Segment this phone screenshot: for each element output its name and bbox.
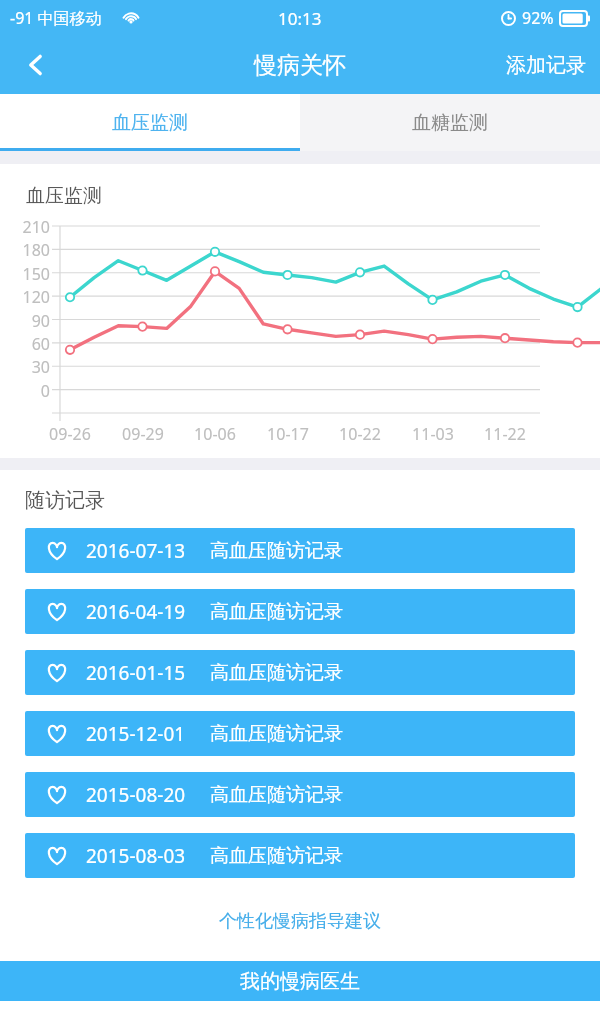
- staticText: 11-03: [399, 423, 467, 445]
- staticText: 09-29: [109, 423, 177, 445]
- staticText: 90: [0, 310, 50, 332]
- button[interactable]: 添加记录: [492, 36, 600, 94]
- staticText: 个性化慢病指导建议: [219, 910, 381, 933]
- staticText: 10-06: [181, 423, 249, 445]
- staticText: 92%: [522, 7, 554, 29]
- staticText: 10-17: [254, 423, 322, 445]
- button[interactable]: 血糖监测: [300, 94, 600, 151]
- button[interactable]: 2015-08-03: [25, 833, 575, 878]
- staticText: 高血压随访记录: [210, 600, 343, 624]
- staticText: 150: [0, 263, 50, 285]
- staticText: 添加记录: [506, 53, 586, 78]
- button[interactable]: 血压监测: [0, 94, 300, 151]
- staticText: 60: [0, 333, 50, 355]
- button[interactable]: 个性化慢病指导建议: [203, 906, 397, 937]
- staticText: 高血压随访记录: [210, 539, 343, 563]
- staticText: 2016-07-13: [86, 538, 186, 564]
- button[interactable]: 2016-01-15: [25, 650, 575, 695]
- staticText: 2015-08-03: [86, 843, 186, 869]
- staticText: 09-26: [36, 423, 104, 445]
- staticText: 高血压随访记录: [210, 844, 343, 868]
- staticText: 0: [0, 380, 50, 402]
- staticText: 高血压随访记录: [210, 783, 343, 807]
- staticText: 2015-12-01: [86, 721, 186, 747]
- button[interactable]: 我的慢病医生: [0, 961, 600, 1001]
- staticText: 慢病关怀: [254, 51, 346, 80]
- staticText: 高血压随访记录: [210, 661, 343, 685]
- staticText: 我的慢病医生: [240, 969, 360, 994]
- staticText: 180: [0, 239, 50, 261]
- button[interactable]: 2016-04-19: [25, 589, 575, 634]
- staticText: 血压监测: [112, 111, 188, 135]
- staticText: -91 中国移动: [10, 7, 102, 29]
- staticText: 2016-04-19: [86, 599, 186, 625]
- staticText: 11-22: [471, 423, 539, 445]
- staticText: 210: [0, 216, 50, 238]
- staticText: 30: [0, 356, 50, 378]
- button[interactable]: 2015-08-20: [25, 772, 575, 817]
- staticText: 2016-01-15: [86, 660, 186, 686]
- staticText: 120: [0, 286, 50, 308]
- staticText: 随访记录: [25, 488, 105, 513]
- staticText: 10:13: [278, 7, 322, 30]
- staticText: 血压监测: [26, 184, 102, 208]
- staticText: 2015-08-20: [86, 782, 186, 808]
- staticText: 高血压随访记录: [210, 722, 343, 746]
- staticText: 血糖监测: [412, 111, 488, 135]
- staticText: 10-22: [326, 423, 394, 445]
- button[interactable]: Back: [0, 36, 72, 94]
- button[interactable]: 2015-12-01: [25, 711, 575, 756]
- button[interactable]: 2016-07-13: [25, 528, 575, 573]
